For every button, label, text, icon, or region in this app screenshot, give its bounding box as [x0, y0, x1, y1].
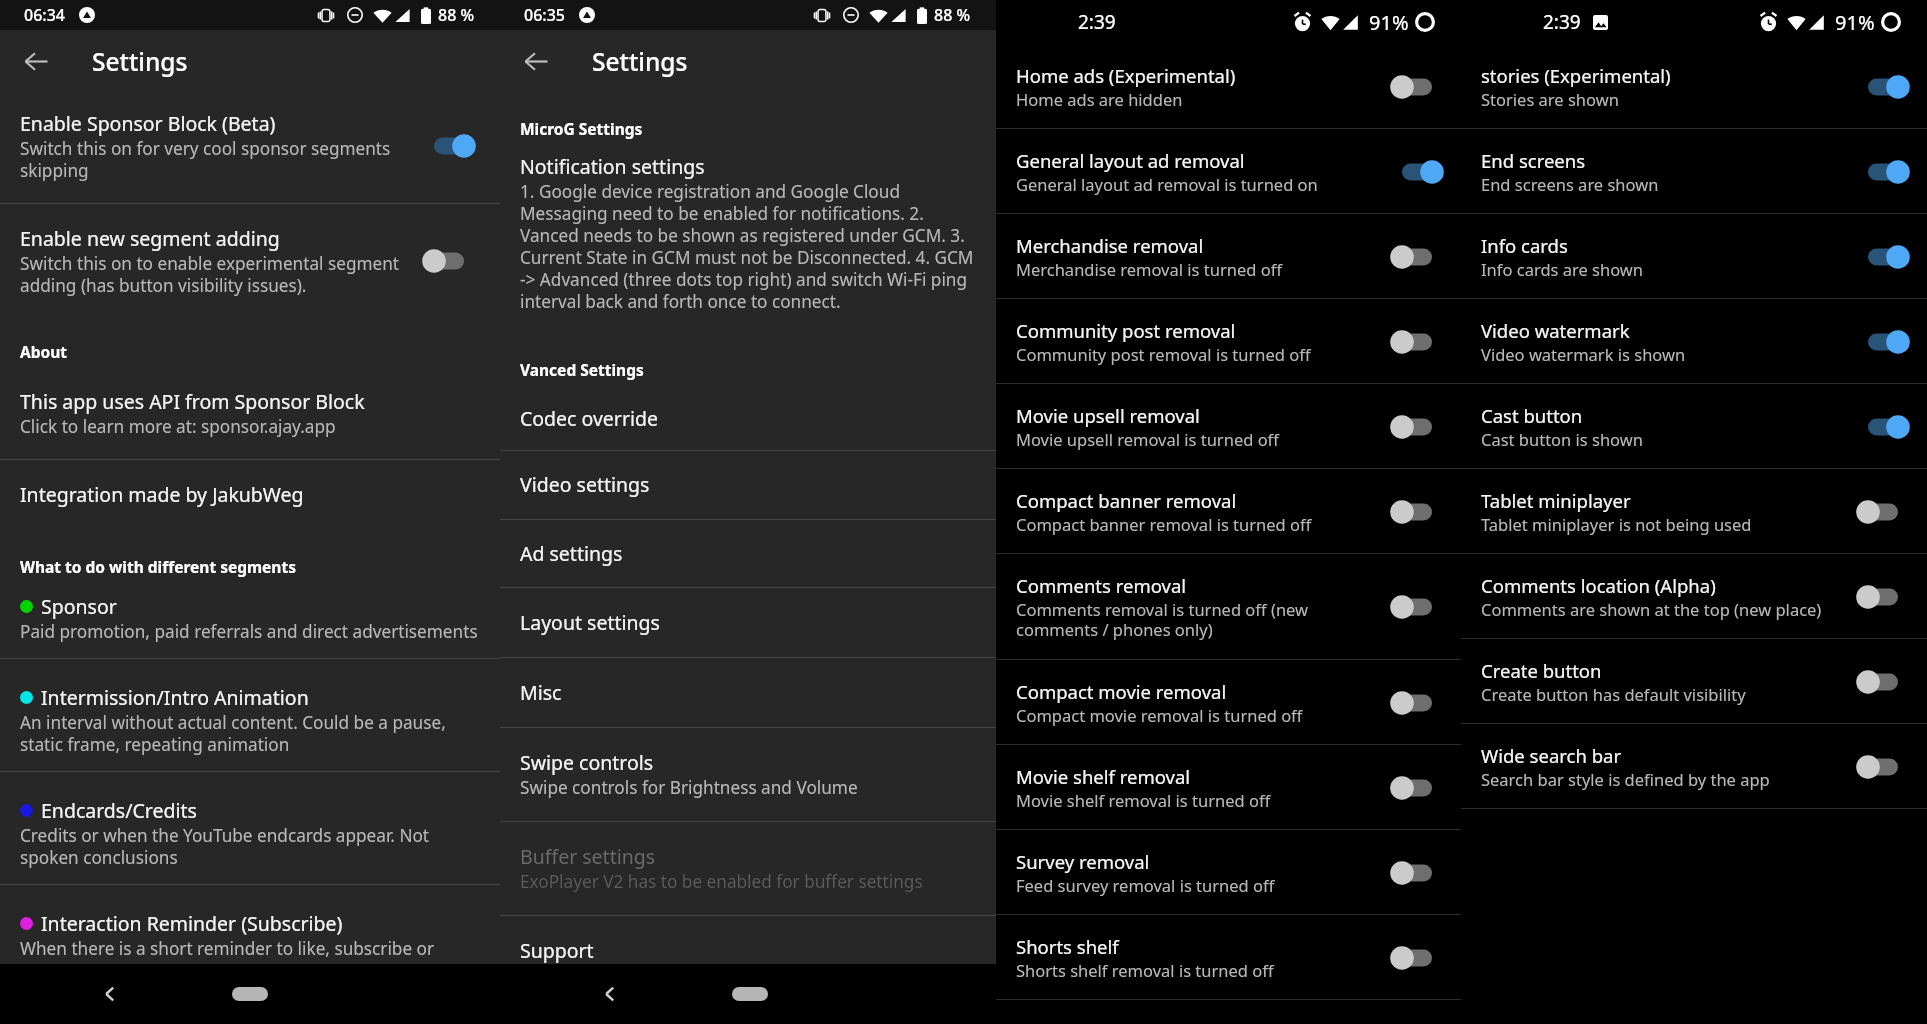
staticText: Layout settings	[520, 609, 660, 636]
staticText: Switch this on to enable experimental se…	[20, 252, 409, 297]
button[interactable]: Compact movie removal	[996, 660, 1461, 744]
button[interactable]: Create button	[1461, 639, 1927, 723]
button[interactable]: Toggle Comments removal	[1393, 589, 1451, 625]
staticText: Shorts shelf removal is turned off	[1016, 959, 1274, 981]
button[interactable]: Home	[232, 987, 268, 1001]
button[interactable]: Home	[732, 987, 768, 1001]
button[interactable]: Toggle Cast button	[1859, 409, 1917, 445]
staticText: Info cards are shown	[1481, 258, 1643, 280]
button[interactable]: Toggle Video watermark	[1859, 324, 1917, 360]
button[interactable]: Toggle Enable Sponsor Block (Beta)	[425, 128, 483, 164]
button[interactable]: This app uses API from Sponsor Block	[0, 388, 500, 459]
button[interactable]: General layout ad removal	[996, 129, 1461, 213]
staticText: ExoPlayer V2 has to be enabled for buffe…	[520, 870, 923, 893]
staticText: Enable new segment adding	[20, 225, 280, 252]
button[interactable]: Back	[500, 30, 572, 92]
button[interactable]: Home ads (Experimental)	[996, 44, 1461, 128]
button[interactable]: Enable new segment adding	[0, 204, 500, 305]
button[interactable]: Toggle Tablet miniplayer	[1859, 494, 1917, 530]
button[interactable]: Support	[500, 916, 996, 985]
button[interactable]: Intermission/Intro Animation	[0, 659, 500, 771]
staticText: Ad settings	[520, 540, 623, 567]
staticText: Community post removal	[1016, 318, 1236, 343]
staticText: Swipe controls for Brightness and Volume	[520, 776, 858, 799]
staticText: Enable Sponsor Block (Beta)	[20, 110, 276, 137]
button[interactable]: Shorts shelf	[996, 915, 1461, 999]
button[interactable]: Community post removal	[996, 299, 1461, 383]
button[interactable]: Endcards/Credits	[0, 772, 500, 884]
staticText: About	[20, 341, 68, 362]
button[interactable]: Back	[90, 974, 130, 1014]
staticText: Sponsor	[41, 593, 117, 620]
button[interactable]: End screens	[1461, 129, 1927, 213]
button[interactable]: Layout settings	[500, 588, 996, 657]
staticText: Swipe controls	[520, 749, 654, 776]
button[interactable]: Comments location (Alpha)	[1461, 554, 1927, 638]
staticText: Integration made by JakubWeg	[20, 481, 304, 508]
staticText: Support	[520, 937, 594, 964]
button[interactable]: Back	[0, 30, 72, 92]
staticText: Endcards/Credits	[41, 797, 197, 824]
button[interactable]: Integration made by JakubWeg	[0, 460, 500, 530]
staticText: Click to learn more at: sponsor.ajay.app	[20, 415, 336, 438]
staticText: Compact banner removal	[1016, 488, 1237, 513]
button[interactable]: stories (Experimental)	[1461, 44, 1927, 128]
button[interactable]: Cast button	[1461, 384, 1927, 468]
staticText: Video settings	[520, 471, 650, 498]
staticText: Home ads (Experimental)	[1016, 63, 1236, 88]
button[interactable]: Swipe controls	[500, 728, 996, 821]
button[interactable]: Toggle Compact movie removal	[1393, 685, 1451, 721]
staticText: Credits or when the YouTube endcards app…	[20, 824, 492, 869]
button[interactable]: Comments removal	[996, 554, 1461, 659]
button[interactable]: Toggle Home ads (Experimental)	[1393, 69, 1451, 105]
button[interactable]: Misc	[500, 658, 996, 727]
button[interactable]: Toggle stories (Experimental)	[1859, 69, 1917, 105]
button[interactable]: Enable Sponsor Block (Beta)	[0, 104, 500, 203]
button[interactable]: Buffer settings	[500, 822, 996, 915]
button[interactable]: Compact banner removal	[996, 469, 1461, 553]
staticText: Cast button is shown	[1481, 428, 1643, 450]
button[interactable]: Wide search bar	[1461, 724, 1927, 808]
button[interactable]: Video settings	[500, 451, 996, 519]
button[interactable]: Toggle Movie shelf removal	[1393, 770, 1451, 806]
button[interactable]: Toggle Merchandise removal	[1393, 239, 1451, 275]
staticText: 91%	[1369, 9, 1409, 36]
button[interactable]: Sponsor	[0, 593, 500, 658]
button[interactable]: Toggle Community post removal	[1393, 324, 1451, 360]
button[interactable]: Toggle Compact banner removal	[1393, 494, 1451, 530]
button[interactable]: Toggle Movie upsell removal	[1393, 409, 1451, 445]
button[interactable]: Notification settings	[500, 153, 996, 323]
button[interactable]: Video watermark	[1461, 299, 1927, 383]
staticText: 1. Google device registration and Google…	[520, 180, 982, 313]
staticText: Comments removal is turned off (new comm…	[1016, 598, 1377, 641]
button[interactable]: Merchandise removal	[996, 214, 1461, 298]
button[interactable]: Codec override	[500, 405, 996, 450]
button[interactable]: Movie shelf removal	[996, 745, 1461, 829]
staticText: An interval without actual content. Coul…	[20, 711, 492, 756]
staticText: Shorts shelf	[1016, 934, 1119, 959]
button[interactable]: Movie upsell removal	[996, 384, 1461, 468]
button[interactable]: Back	[590, 974, 630, 1014]
button[interactable]: Toggle Enable new segment adding	[425, 243, 483, 279]
staticText: Comments location (Alpha)	[1481, 573, 1716, 598]
button[interactable]: Toggle General layout ad removal	[1393, 154, 1451, 190]
button[interactable]: Tablet miniplayer	[1461, 469, 1927, 553]
button[interactable]: Toggle Info cards	[1859, 239, 1917, 275]
button[interactable]: Info cards	[1461, 214, 1927, 298]
button[interactable]: Ad settings	[500, 520, 996, 587]
button[interactable]: Interaction Reminder (Subscribe)	[0, 885, 500, 975]
button[interactable]: Toggle Create button	[1859, 664, 1917, 700]
staticText: Merchandise removal is turned off	[1016, 258, 1282, 280]
button[interactable]: Toggle End screens	[1859, 154, 1917, 190]
staticText: Paid promotion, paid referrals and direc…	[20, 620, 478, 643]
button[interactable]: Toggle Shorts shelf	[1393, 940, 1451, 976]
staticText: Vanced Settings	[520, 359, 644, 380]
staticText: Compact banner removal is turned off	[1016, 513, 1312, 535]
button[interactable]: Toggle Wide search bar	[1859, 749, 1917, 785]
button[interactable]: Toggle Survey removal	[1393, 855, 1451, 891]
staticText: Switch this on for very cool sponsor seg…	[20, 137, 409, 182]
button[interactable]: Survey removal	[996, 830, 1461, 914]
staticText: Compact movie removal	[1016, 679, 1227, 704]
button[interactable]: Toggle Comments location (Alpha)	[1859, 579, 1917, 615]
staticText: 91%	[1835, 9, 1875, 36]
